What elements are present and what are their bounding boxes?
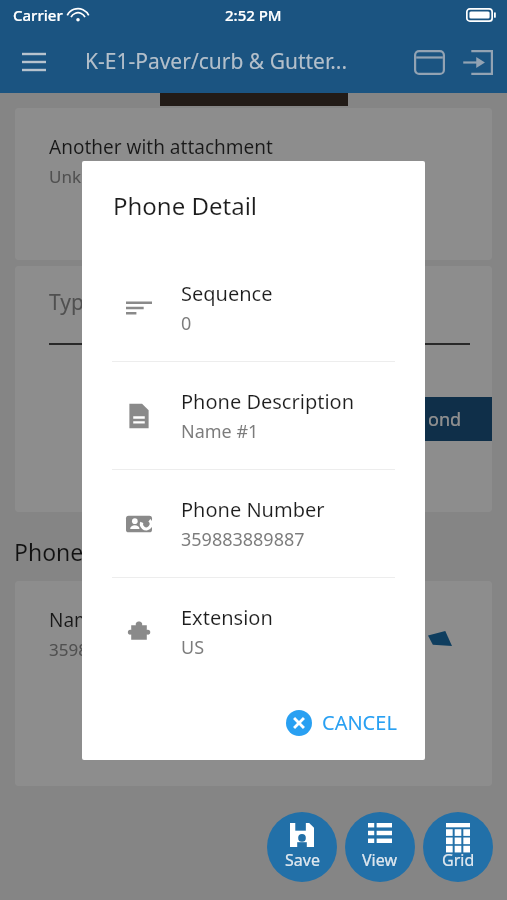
staticText: Phone Description [181,388,355,415]
button[interactable]: ond [397,397,492,441]
staticText: Phone [14,536,84,567]
button[interactable]: CANCEL [280,703,403,742]
staticText: Another with attachment [49,134,273,160]
staticText: Save [285,849,320,871]
button[interactable]: Phone Description [82,362,425,469]
staticText: 0 [181,311,192,336]
button[interactable]: Menu [10,38,58,86]
button[interactable]: Name #1 [15,581,492,786]
staticText: Extension [181,604,273,631]
staticText: Phone Number [181,496,325,523]
staticText: Grid [442,849,475,871]
staticText: US [181,635,205,660]
staticText: 359883889887 [181,527,305,552]
button[interactable]: Log out [453,38,501,86]
staticText: CANCEL [322,709,397,736]
staticText: Unknown | Wed, Apr 3, 2019 4:30 PM [49,165,347,188]
staticText: Phone Detail [113,189,258,222]
staticText: ond [428,407,462,432]
button[interactable]: Sequence [82,254,425,361]
button[interactable]: Grid [423,812,493,882]
staticText: 359883889887 [49,638,166,661]
button[interactable]: Phone Number [82,470,425,577]
staticText: 2:52 PM [225,5,282,25]
button[interactable]: Another with attachment [15,108,492,260]
button[interactable]: Window [405,38,453,86]
staticText: Name #1 [181,419,259,444]
staticText: Sequence [181,280,273,307]
staticText: Type [49,288,96,317]
staticText: K-E1-Paver/curb & Gutter... [85,47,348,76]
staticText: Carrier [13,5,63,25]
button[interactable]: Save [267,812,337,882]
staticText: View [362,849,398,871]
button[interactable]: Extension [82,578,425,685]
button[interactable]: View [345,812,415,882]
staticText: Name #1 [49,607,131,633]
